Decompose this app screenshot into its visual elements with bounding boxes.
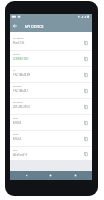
button[interactable]: GATEWAY: [10, 83, 92, 98]
staticText: MY DEVICE: [13, 37, 24, 40]
button[interactable]: STATUS: [10, 51, 92, 66]
button[interactable]: Back: [22, 171, 31, 180]
staticText: 192.168.43.89: [13, 73, 30, 77]
staticText: 255.255.255.0: [13, 105, 30, 109]
button[interactable]: MAC: [10, 147, 92, 160]
button[interactable]: Copy STATUS: [79, 51, 92, 66]
button[interactable]: IP: [10, 67, 92, 82]
staticText: DNS1: [13, 117, 19, 120]
staticText: b0:e5:ed:1f: [13, 153, 27, 157]
button[interactable]: Recents: [71, 171, 80, 180]
staticText: 192.168.43.1: [13, 89, 29, 93]
staticText: NETMASK: [13, 101, 23, 104]
staticText: STATUS: [13, 53, 21, 56]
button[interactable]: Home: [46, 171, 55, 180]
staticText: MY DEVICE: [25, 24, 44, 29]
staticText: IP: [13, 69, 15, 72]
button[interactable]: Copy NETMASK: [79, 99, 92, 114]
button[interactable]: DNS1: [10, 115, 92, 130]
button[interactable]: Copy IP: [79, 67, 92, 82]
staticText: 8.8.4.4: [13, 137, 22, 141]
staticText: DNS2: [13, 133, 19, 136]
button[interactable]: Copy GATEWAY: [79, 83, 92, 98]
button[interactable]: Copy DNS1: [79, 115, 92, 130]
button[interactable]: Copy MY DEVICE: [79, 35, 92, 50]
button[interactable]: NETMASK: [10, 99, 92, 114]
staticText: GATEWAY: [13, 85, 23, 88]
button[interactable]: Copy DNS2: [79, 131, 92, 146]
staticText: CONNECTED: [13, 57, 29, 61]
button[interactable]: MY DEVICE: [10, 35, 92, 50]
button[interactable]: DNS2: [10, 131, 92, 146]
staticText: 8.8.8.8: [13, 121, 22, 125]
staticText: MAC: [13, 149, 18, 152]
button[interactable]: Copy MAC: [79, 147, 92, 160]
staticText: Pixel 3 XL: [13, 41, 25, 45]
button[interactable]: Back: [11, 20, 18, 32]
